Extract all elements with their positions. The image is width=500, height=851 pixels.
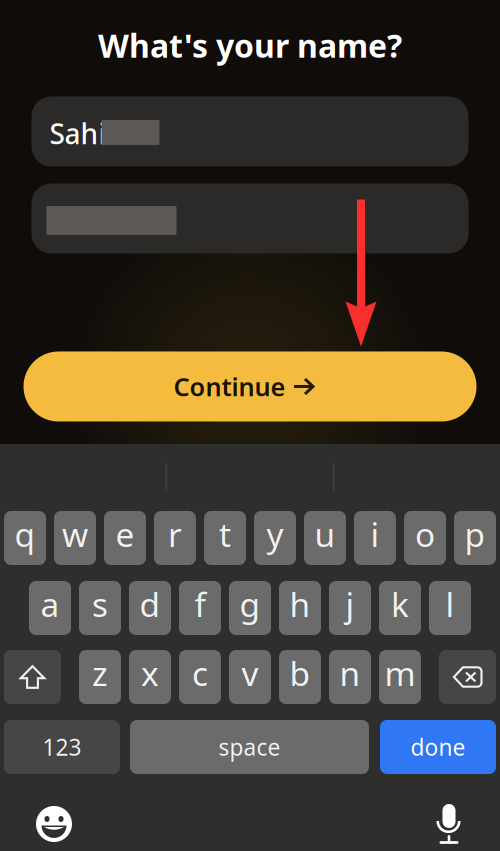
staticText: j xyxy=(345,582,354,626)
button[interactable]: k xyxy=(379,581,421,635)
button[interactable]: c xyxy=(179,650,221,704)
button[interactable]: 123 xyxy=(4,720,120,774)
staticText: Continue xyxy=(173,370,285,403)
button[interactable]: Delete xyxy=(439,650,496,704)
staticText: q xyxy=(14,512,35,556)
button[interactable]: u xyxy=(304,511,346,565)
staticText: t xyxy=(219,512,231,556)
staticText: n xyxy=(339,651,360,695)
button[interactable]: o xyxy=(404,511,446,565)
button[interactable]: h xyxy=(279,581,321,635)
staticText: g xyxy=(239,582,260,626)
staticText: v xyxy=(241,651,258,695)
button[interactable]: x xyxy=(129,650,171,704)
button[interactable]: b xyxy=(279,650,321,704)
button[interactable]: Dictate xyxy=(434,804,464,844)
button[interactable]: j xyxy=(329,581,371,635)
button[interactable]: space xyxy=(130,720,369,774)
staticText: l xyxy=(445,582,454,626)
staticText: h xyxy=(289,582,310,626)
staticText: s xyxy=(92,582,108,626)
button[interactable]: y xyxy=(254,511,296,565)
button[interactable]: g xyxy=(229,581,271,635)
staticText: space xyxy=(218,732,280,762)
staticText: Sahil xyxy=(49,115,114,152)
staticText: u xyxy=(314,512,335,556)
staticText: p xyxy=(464,512,485,556)
staticText: y xyxy=(266,512,283,556)
button[interactable]: f xyxy=(179,581,221,635)
button[interactable]: Emoji xyxy=(36,806,72,842)
button[interactable]: r xyxy=(154,511,196,565)
button[interactable]: m xyxy=(379,650,421,704)
staticText: c xyxy=(192,651,208,695)
button[interactable]: z xyxy=(79,650,121,704)
staticText: f xyxy=(194,582,205,626)
staticText: m xyxy=(384,651,415,695)
button[interactable]: a xyxy=(29,581,71,635)
button[interactable]: Continue xyxy=(23,351,476,421)
staticText: w xyxy=(62,512,88,556)
staticText: d xyxy=(139,582,160,626)
staticText: i xyxy=(370,512,379,556)
button[interactable]: e xyxy=(104,511,146,565)
staticText: b xyxy=(289,651,310,695)
staticText: z xyxy=(92,651,108,695)
button[interactable]: i xyxy=(354,511,396,565)
staticText: a xyxy=(40,582,59,626)
button[interactable]: v xyxy=(229,650,271,704)
button[interactable]: q xyxy=(4,511,46,565)
staticText: r xyxy=(168,512,182,556)
staticText: done xyxy=(410,732,465,762)
button[interactable]: w xyxy=(54,511,96,565)
button[interactable]: l xyxy=(429,581,471,635)
staticText: x xyxy=(141,651,159,695)
staticText: o xyxy=(415,512,435,556)
button[interactable]: Shift xyxy=(4,650,61,704)
staticText: e xyxy=(115,512,134,556)
button[interactable]: s xyxy=(79,581,121,635)
button[interactable]: t xyxy=(204,511,246,565)
button[interactable]: done xyxy=(380,720,496,774)
staticText: 123 xyxy=(42,732,81,762)
button[interactable]: d xyxy=(129,581,171,635)
staticText: k xyxy=(391,582,409,626)
button[interactable]: n xyxy=(329,650,371,704)
staticText: What's your name? xyxy=(98,24,402,66)
button[interactable]: p xyxy=(454,511,496,565)
